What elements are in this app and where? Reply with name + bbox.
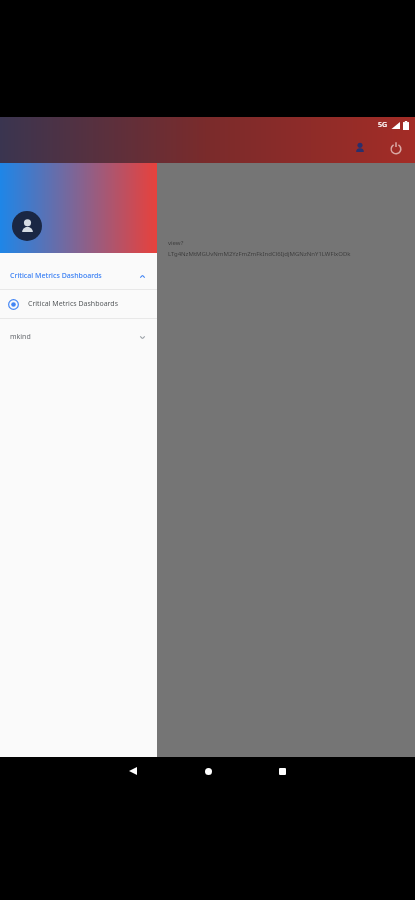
button[interactable]: Power (385, 137, 407, 159)
button[interactable]: Home (195, 758, 221, 784)
button[interactable]: Critical Metrics Dashboards (0, 290, 157, 318)
staticText: mkind (10, 332, 31, 342)
button[interactable]: Critical Metrics Dashboards (0, 263, 157, 289)
button[interactable]: mkind (0, 324, 157, 350)
staticText: Critical Metrics Dashboards (28, 299, 119, 309)
staticText: LTg4NzMtMGUvNmM2YzFmZmFkIndCl6IjdjMGNzNn… (168, 250, 351, 258)
button[interactable]: Recents (269, 758, 295, 784)
staticText: 5G (378, 120, 388, 130)
button[interactable]: Profile (12, 211, 42, 241)
button[interactable]: Back (120, 758, 146, 784)
staticText: view? (168, 239, 184, 247)
button[interactable]: Account (349, 137, 371, 159)
staticText: Critical Metrics Dashboards (10, 271, 102, 281)
